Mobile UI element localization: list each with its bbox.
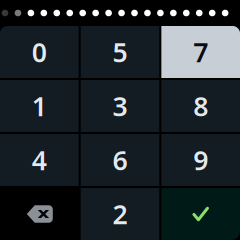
staticText: 0 xyxy=(32,34,47,70)
button[interactable]: 0 xyxy=(0,26,79,78)
button[interactable]: 7 xyxy=(161,26,240,78)
button[interactable]: 3 xyxy=(81,80,159,132)
staticText: 8 xyxy=(193,88,208,124)
staticText: 7 xyxy=(193,34,208,70)
staticText: 9 xyxy=(193,142,208,178)
button[interactable]: 9 xyxy=(161,134,240,186)
staticText: 3 xyxy=(112,88,127,124)
button[interactable]: 4 xyxy=(0,134,79,186)
button[interactable]: Confirm xyxy=(161,188,240,240)
staticText: 5 xyxy=(112,34,127,70)
button[interactable]: 1 xyxy=(0,80,79,132)
button[interactable]: 5 xyxy=(81,26,159,78)
staticText: 4 xyxy=(32,142,47,178)
staticText: 1 xyxy=(32,88,47,124)
staticText: 2 xyxy=(112,196,127,232)
button[interactable]: 6 xyxy=(81,134,159,186)
staticText: 6 xyxy=(112,142,127,178)
button[interactable]: 8 xyxy=(161,80,240,132)
button[interactable]: Delete xyxy=(0,188,79,240)
button[interactable]: 2 xyxy=(81,188,159,240)
